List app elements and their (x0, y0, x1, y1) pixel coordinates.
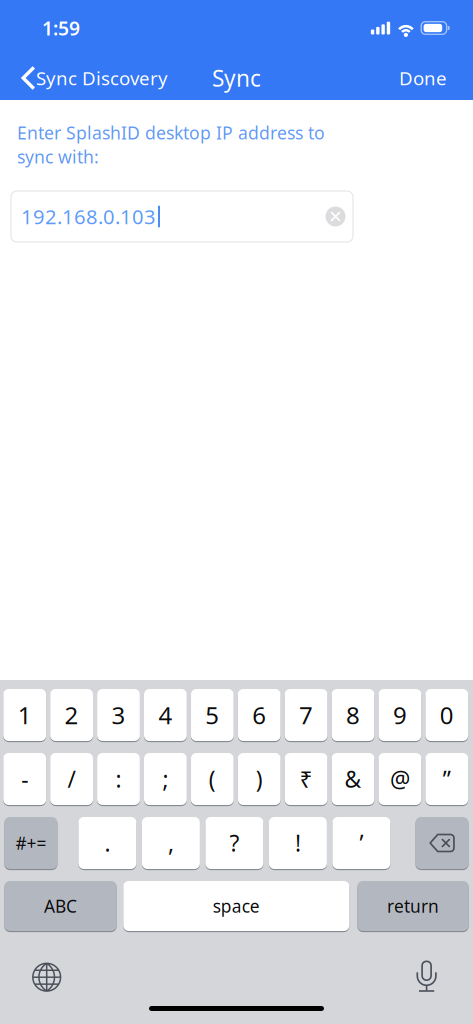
staticText: . (104, 828, 110, 858)
staticText: 1 (18, 699, 32, 731)
button[interactable]: & (332, 753, 374, 805)
button[interactable]: @ (378, 753, 421, 805)
staticText: 7 (299, 699, 313, 731)
button[interactable]: 8 (332, 689, 374, 741)
staticText: 8 (346, 699, 360, 731)
button[interactable]: space (123, 881, 349, 931)
button[interactable]: 4 (144, 689, 187, 741)
staticText: 1:59 (42, 15, 80, 41)
staticText: / (68, 764, 76, 794)
staticText: 3 (111, 699, 125, 731)
staticText: ” (443, 764, 451, 794)
button[interactable]: ; (144, 753, 187, 805)
staticText: ! (295, 828, 301, 858)
staticText: sync with: (17, 145, 99, 168)
staticText: ) (256, 764, 263, 794)
button[interactable]: Dictate (407, 951, 446, 1001)
button[interactable]: 9 (378, 689, 421, 741)
staticText: space (213, 894, 260, 917)
button[interactable]: 3 (97, 689, 140, 741)
staticText: - (21, 764, 28, 794)
button[interactable]: - (3, 753, 46, 805)
button[interactable]: ? (205, 817, 263, 869)
staticText: ? (229, 828, 239, 858)
button[interactable]: 7 (285, 689, 327, 741)
button[interactable]: Sync Discovery (0, 56, 178, 100)
button[interactable]: Done (385, 56, 473, 100)
button[interactable]: : (97, 753, 140, 805)
button[interactable]: ₹ (285, 753, 327, 805)
button[interactable]: ( (191, 753, 234, 805)
staticText: Enter SplashID desktop IP address to (17, 121, 325, 144)
staticText: 2 (65, 699, 79, 731)
staticText: ; (162, 764, 168, 794)
staticText: , (168, 828, 174, 858)
staticText: ABC (44, 894, 77, 917)
button[interactable]: / (50, 753, 93, 805)
staticText: Sync Discovery (36, 66, 168, 90)
staticText: Done (399, 66, 447, 90)
button[interactable]: ” (425, 753, 468, 805)
staticText: #+= (15, 831, 46, 854)
button[interactable]: return (357, 881, 469, 931)
staticText: 9 (393, 699, 407, 731)
button[interactable]: ! (269, 817, 327, 869)
button[interactable]: 1 (3, 689, 46, 741)
staticText: 6 (252, 699, 266, 731)
staticText: Sync (212, 63, 261, 93)
staticText: & (344, 764, 361, 794)
button[interactable]: 0 (425, 689, 468, 741)
button[interactable]: Delete (415, 817, 468, 869)
staticText: @ (390, 764, 410, 794)
button[interactable]: ’ (332, 817, 390, 869)
staticText: ₹ (300, 764, 313, 794)
button[interactable]: 6 (238, 689, 281, 741)
button[interactable]: #+= (4, 817, 57, 869)
button[interactable]: Next keyboard (23, 953, 70, 1001)
staticText: : (115, 764, 121, 794)
button[interactable]: Clear text (325, 206, 345, 226)
staticText: 192.168.0.103 (21, 203, 156, 230)
button[interactable]: 2 (50, 689, 93, 741)
button[interactable]: ) (238, 753, 281, 805)
staticText: ’ (359, 828, 363, 858)
staticText: 5 (205, 699, 219, 731)
button[interactable]: ABC (4, 881, 117, 931)
button[interactable]: , (142, 817, 200, 869)
button[interactable]: 5 (191, 689, 234, 741)
staticText: return (387, 894, 439, 917)
staticText: 4 (158, 699, 172, 731)
staticText: ( (209, 764, 216, 794)
staticText: 0 (440, 699, 454, 731)
button[interactable]: . (78, 817, 136, 869)
